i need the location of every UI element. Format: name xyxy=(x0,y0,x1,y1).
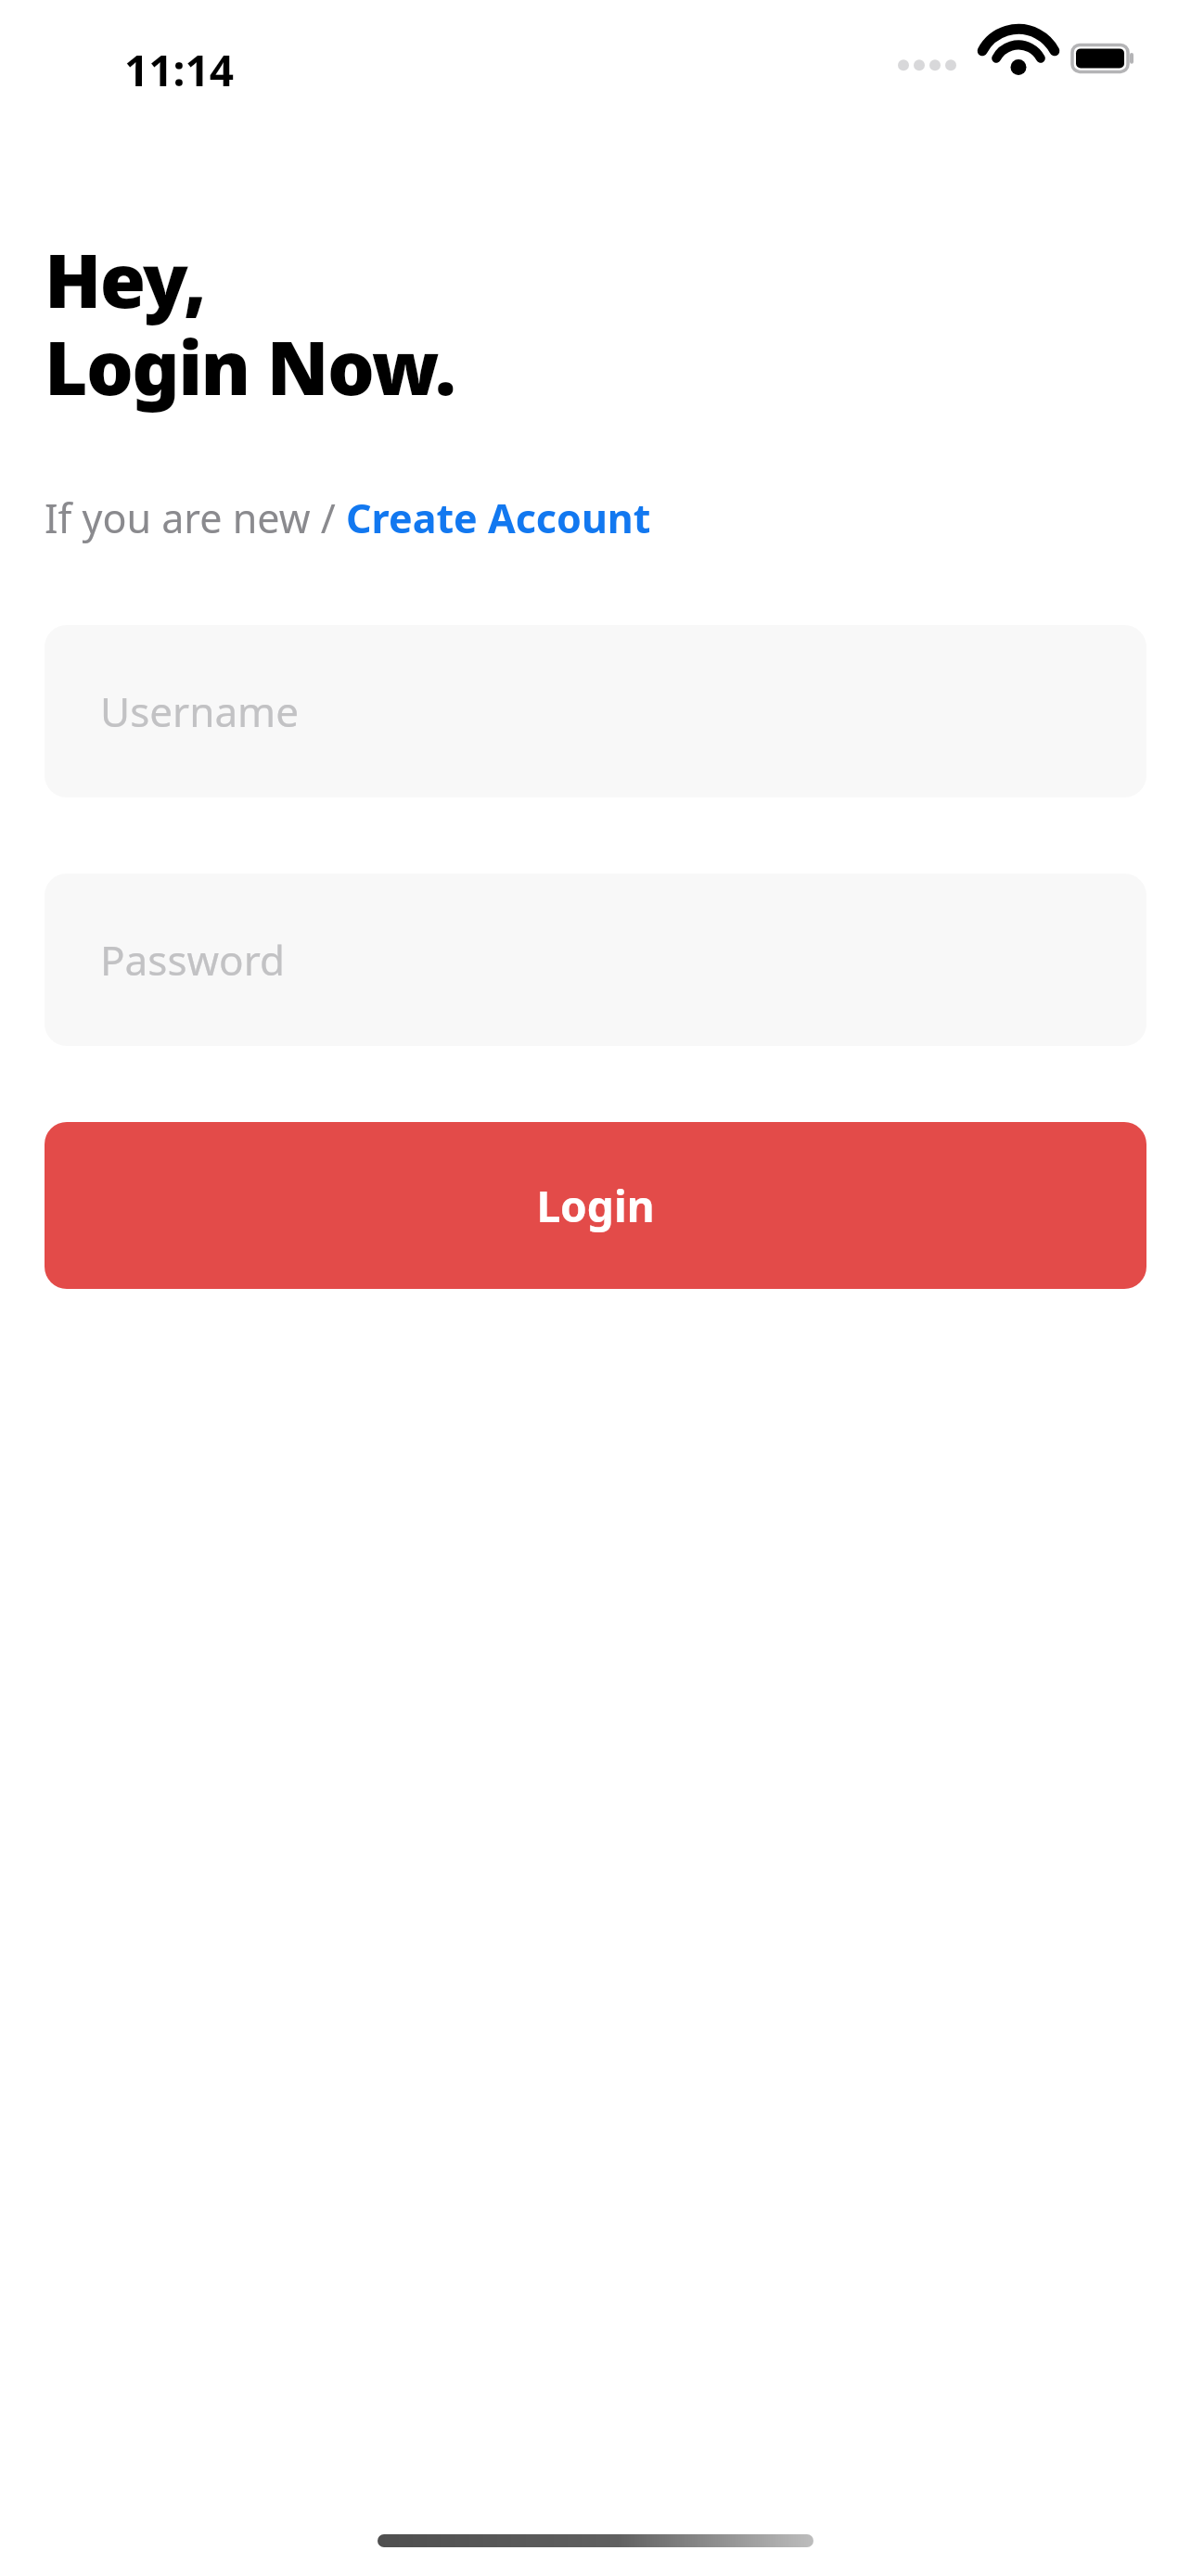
button[interactable]: Username xyxy=(45,625,1146,797)
staticText: If you are new / xyxy=(45,491,346,545)
staticText: Login xyxy=(536,1177,655,1235)
staticText: Password xyxy=(100,932,286,988)
staticText: 11:14 xyxy=(124,41,235,99)
button[interactable]: Login xyxy=(45,1122,1146,1289)
staticText: Username xyxy=(100,683,300,739)
button[interactable]: Create Account xyxy=(346,491,651,545)
staticText: Create Account xyxy=(346,491,651,545)
button[interactable]: Password xyxy=(45,874,1146,1046)
staticText: Hey, Login Now. xyxy=(45,228,455,416)
